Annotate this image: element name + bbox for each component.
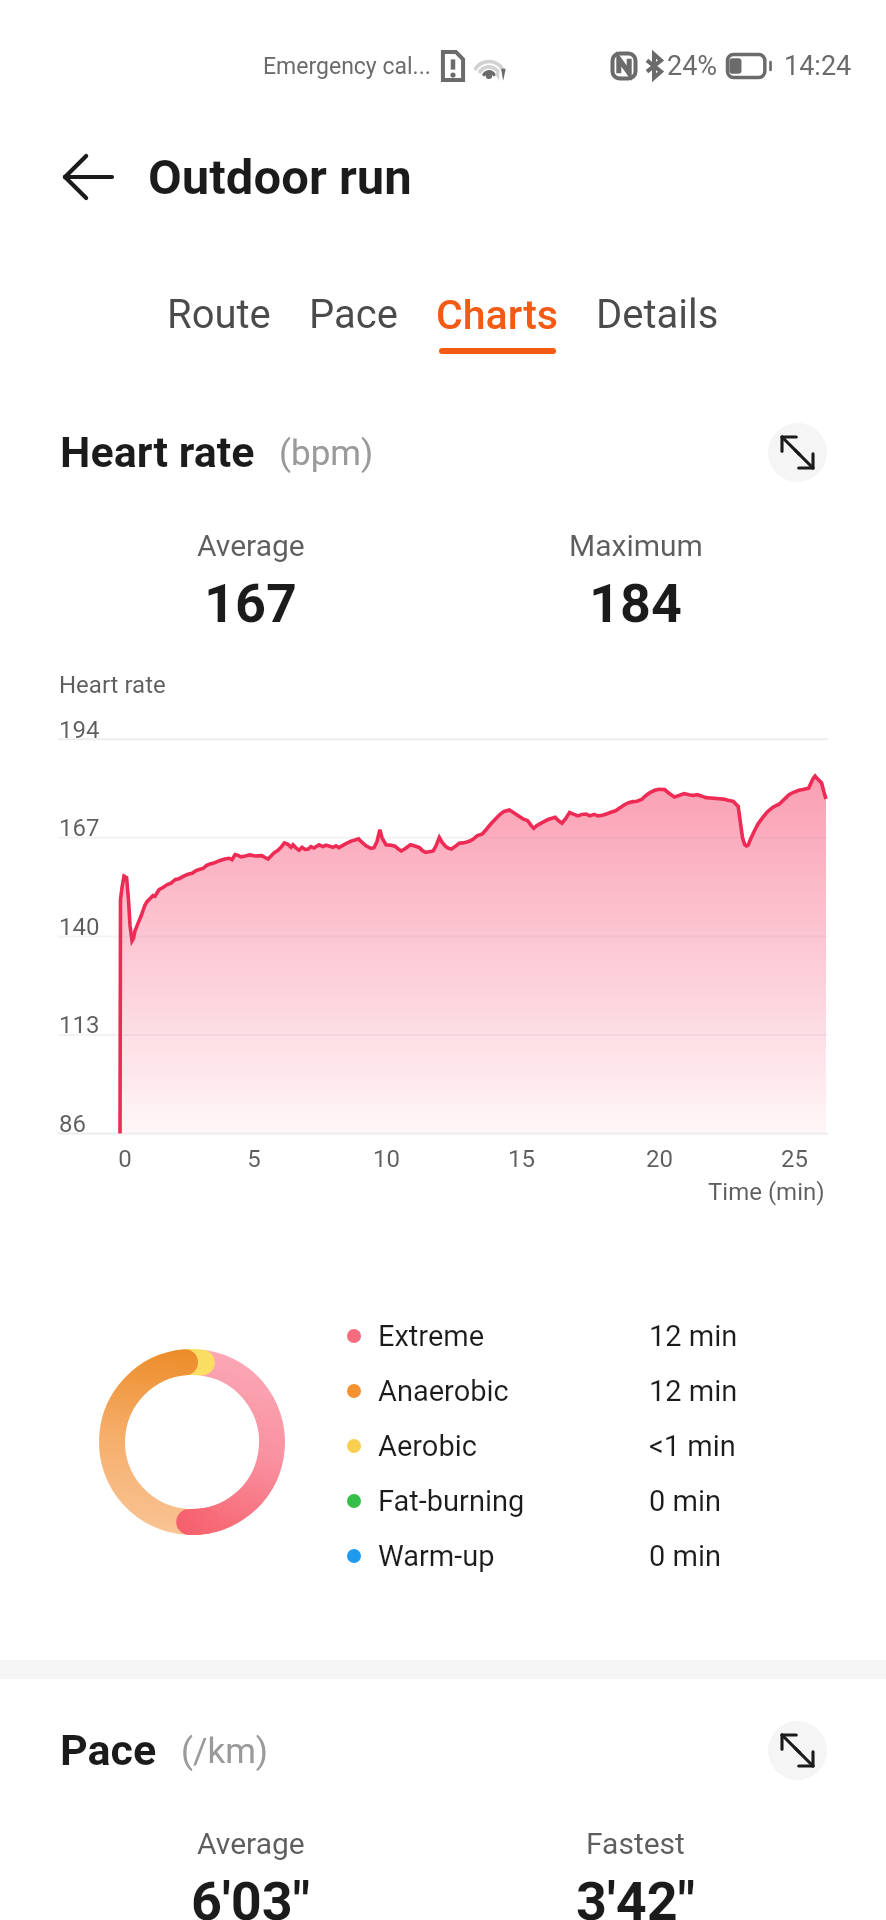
staticText: 25	[781, 1145, 808, 1173]
staticText: 0 min	[649, 1484, 721, 1518]
staticText: 113	[59, 1011, 100, 1039]
staticText: Maximum	[569, 528, 703, 563]
staticText: 0	[118, 1145, 132, 1173]
staticText: Anaerobic	[378, 1374, 509, 1408]
button[interactable]: Expand chart	[768, 1721, 827, 1780]
staticText: (bpm)	[279, 433, 374, 474]
button[interactable]: Pace	[290, 291, 417, 353]
staticText: 86	[59, 1110, 86, 1138]
staticText: Route	[167, 291, 271, 338]
staticText: Aerobic	[378, 1429, 477, 1463]
staticText: Emergency cal...	[263, 53, 431, 80]
staticText: 10	[373, 1145, 400, 1173]
staticText: Time (min)	[708, 1178, 825, 1206]
staticText: Pace	[60, 1725, 157, 1775]
staticText: 194	[59, 716, 100, 744]
button[interactable]: Charts	[417, 291, 577, 354]
staticText: 24%	[667, 50, 718, 82]
staticText: Pace	[309, 291, 398, 338]
staticText: 20	[646, 1145, 673, 1173]
staticText: 0 min	[649, 1539, 721, 1573]
staticText: Warm-up	[378, 1539, 495, 1573]
staticText: 167	[204, 572, 297, 635]
staticText: Fat-burning	[378, 1484, 525, 1518]
staticText: 5	[247, 1145, 261, 1173]
staticText: (/km)	[181, 1731, 269, 1772]
button[interactable]: Back	[44, 134, 132, 220]
staticText: Heart rate	[60, 427, 255, 477]
staticText: 3'42"	[576, 1870, 696, 1920]
staticText: 184	[589, 572, 682, 635]
staticText: Average	[197, 528, 305, 563]
staticText: 12 min	[649, 1374, 738, 1408]
staticText: 167	[59, 814, 100, 842]
staticText: Extreme	[378, 1319, 485, 1353]
staticText: Heart rate	[59, 671, 166, 699]
staticText: 15	[508, 1145, 535, 1173]
button[interactable]: Expand chart	[768, 423, 827, 482]
button[interactable]: Route	[148, 291, 290, 353]
staticText: Outdoor run	[148, 149, 412, 206]
button[interactable]: Details	[577, 291, 738, 353]
staticText: Charts	[436, 291, 558, 339]
staticText: 12 min	[649, 1319, 738, 1353]
staticText: 6'03"	[191, 1870, 311, 1920]
staticText: 140	[59, 913, 100, 941]
staticText: Details	[596, 291, 719, 338]
staticText: 14:24	[784, 50, 852, 82]
staticText: Average	[197, 1826, 305, 1861]
staticText: Fastest	[586, 1826, 685, 1861]
staticText: <1 min	[649, 1429, 736, 1463]
